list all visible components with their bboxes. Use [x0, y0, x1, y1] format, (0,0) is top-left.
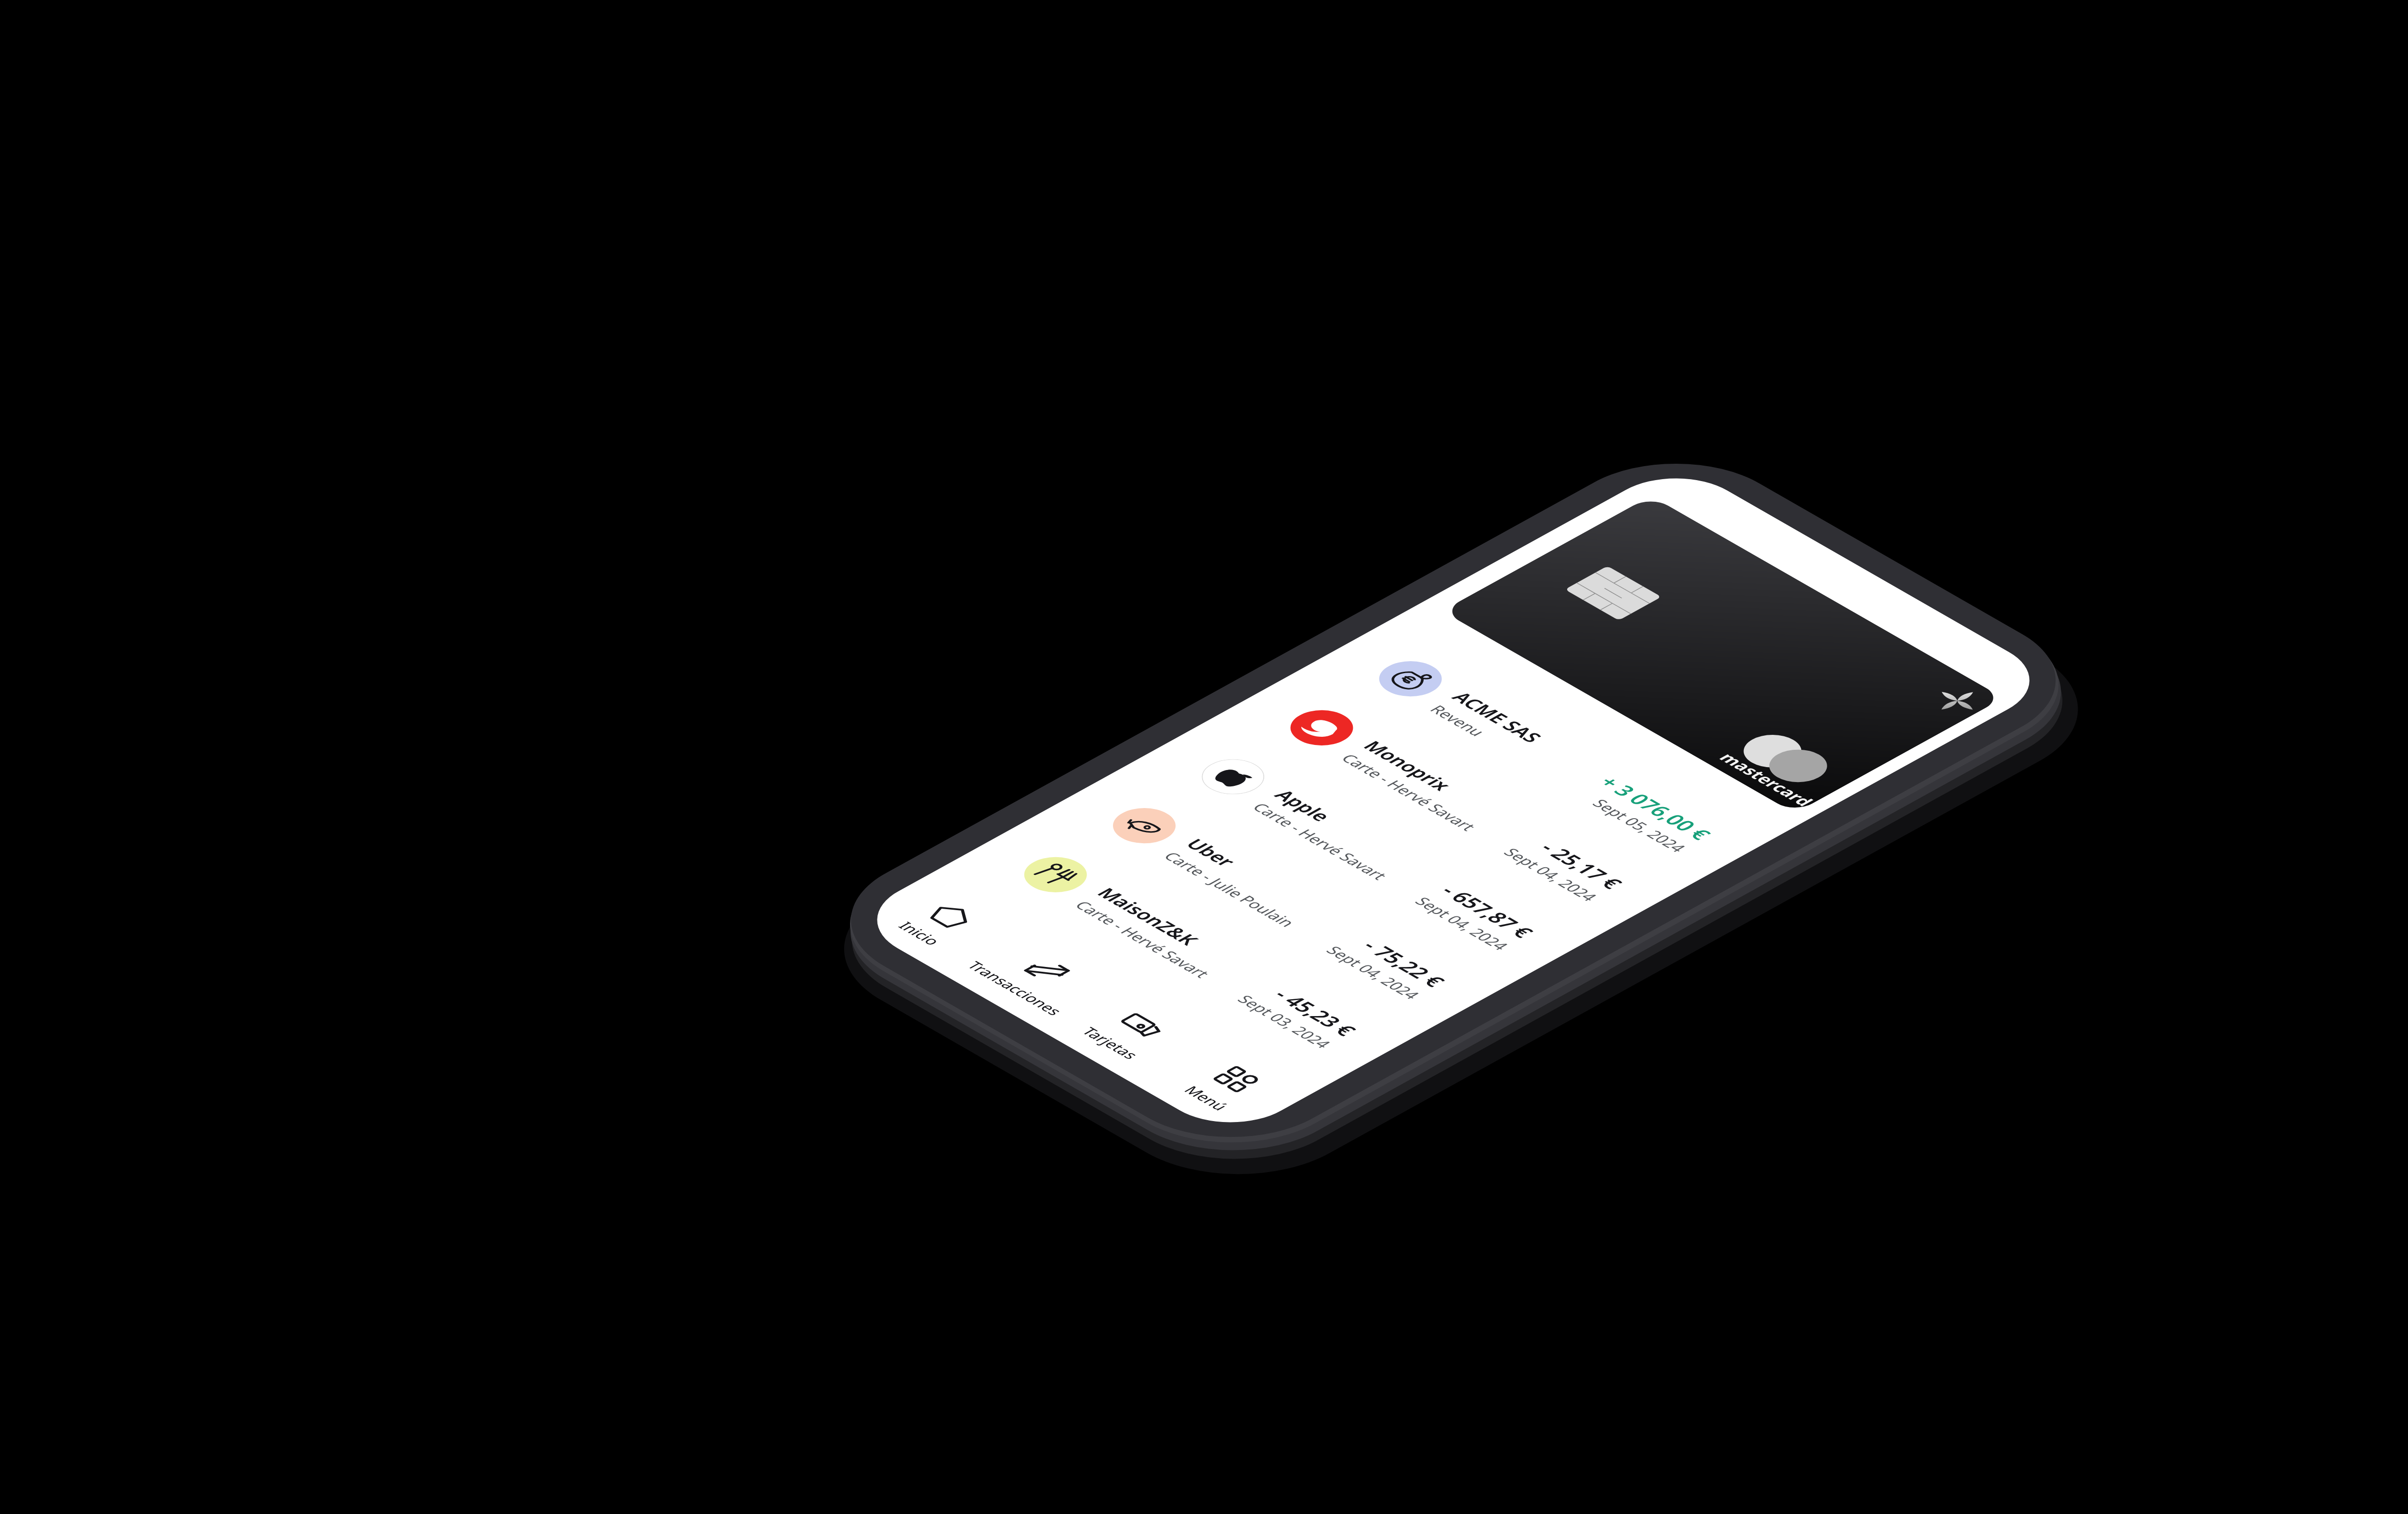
staticText: Transacciones: [963, 958, 1068, 1018]
button[interactable]: Tarjetas: [1054, 981, 1220, 1075]
staticText: Carte - Julie Poulain: [1159, 849, 1301, 930]
staticText: mastercard: [1714, 749, 1819, 810]
staticText: Sept 04, 2024: [1410, 894, 1514, 953]
staticText: MaisonZ&K: [1091, 884, 1205, 949]
button[interactable]: ACME SAS: [1304, 619, 1775, 887]
staticText: Carte - Hervé Savart: [1336, 751, 1482, 834]
button[interactable]: Uber: [1038, 765, 1509, 1034]
staticText: Revenu: [1425, 702, 1491, 739]
button[interactable]: Apple: [1126, 716, 1597, 985]
staticText: Sept 04, 2024: [1499, 845, 1603, 904]
staticText: - 75,22 €: [1356, 936, 1452, 991]
staticText: - 45,23 €: [1268, 985, 1364, 1040]
staticText: - 25,17 €: [1534, 838, 1630, 893]
button[interactable]: Transacciones: [958, 927, 1124, 1020]
staticText: Menú: [1179, 1083, 1233, 1113]
other: Tarjetas: [1111, 1008, 1174, 1043]
staticText: Sept 04, 2024: [1322, 943, 1425, 1002]
staticText: Inicio: [894, 919, 946, 948]
button[interactable]: Menú: [1149, 1037, 1316, 1131]
staticText: + 3 076,00 €: [1593, 772, 1718, 844]
staticText: - 657,87 €: [1435, 881, 1541, 942]
staticText: Uber: [1180, 835, 1243, 870]
staticText: Sept 05, 2024: [1588, 796, 1692, 855]
other: Menú: [1207, 1063, 1270, 1098]
button[interactable]: Monoprix: [1215, 668, 1686, 936]
staticText: Sept 03, 2024: [1233, 992, 1337, 1051]
staticText: Apple: [1268, 786, 1338, 825]
staticText: ACME SAS: [1446, 688, 1548, 746]
staticText: Monoprix: [1357, 737, 1458, 794]
staticText: Tarjetas: [1077, 1024, 1144, 1062]
button[interactable]: MaisonZ&K: [949, 814, 1420, 1083]
other: Transacciones: [1016, 953, 1078, 988]
button[interactable]: Inicio: [863, 872, 1029, 966]
staticText: Carte - Hervé Savart: [1070, 898, 1216, 981]
other: Inicio: [920, 898, 983, 933]
staticText: Carte - Hervé Savart: [1248, 800, 1393, 883]
